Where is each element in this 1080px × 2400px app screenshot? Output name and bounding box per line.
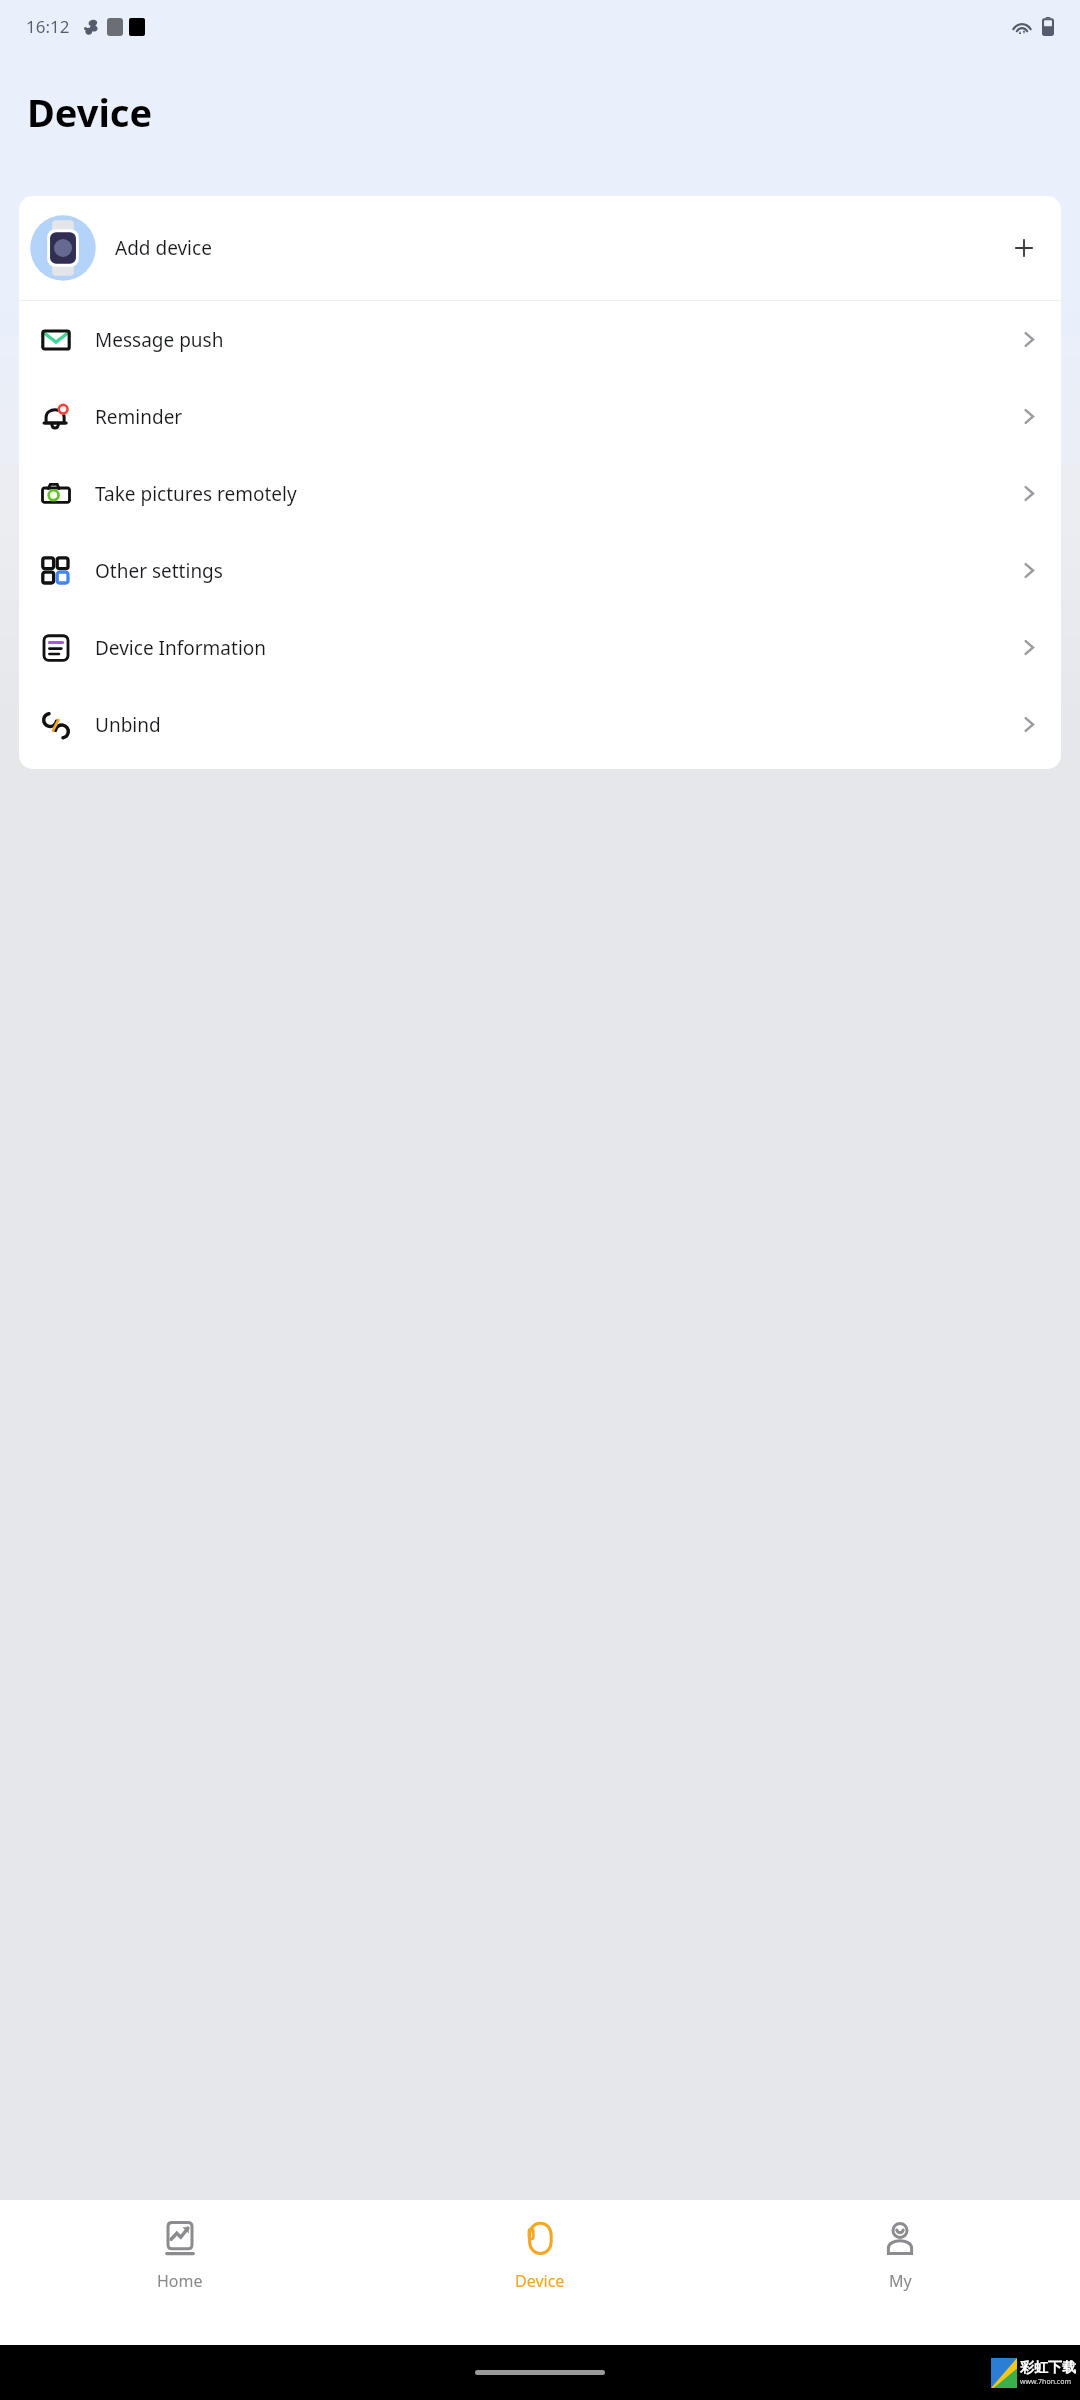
staticText: Home [157,2270,203,2292]
staticText: Device Information [95,635,267,661]
button[interactable]: My [720,2200,1080,2345]
staticText: Reminder [95,404,183,430]
staticText: Unbind [95,712,161,738]
button[interactable]: Message push [19,301,1061,378]
staticText: Take pictures remotely [95,481,297,507]
button[interactable]: Reminder [19,378,1061,455]
staticText: Add device [115,235,212,261]
staticText: 16:12 [26,15,70,38]
button[interactable]: Add device [19,196,1061,300]
staticText: My [889,2270,912,2292]
other: Add device [1013,237,1035,259]
button[interactable]: Unbind [19,686,1061,763]
button[interactable]: Home [0,2200,360,2345]
button[interactable]: Take pictures remotely [19,455,1061,532]
staticText: Other settings [95,558,223,584]
staticText: Device [27,86,153,138]
staticText: Message push [95,327,224,353]
button[interactable]: Device Information [19,609,1061,686]
staticText: www.7hon.com [1020,2377,1072,2387]
button[interactable]: Device [360,2200,720,2345]
button[interactable]: Other settings [19,532,1061,609]
staticText: Device [515,2270,565,2292]
staticText: 彩虹下载 [1020,2359,1076,2377]
